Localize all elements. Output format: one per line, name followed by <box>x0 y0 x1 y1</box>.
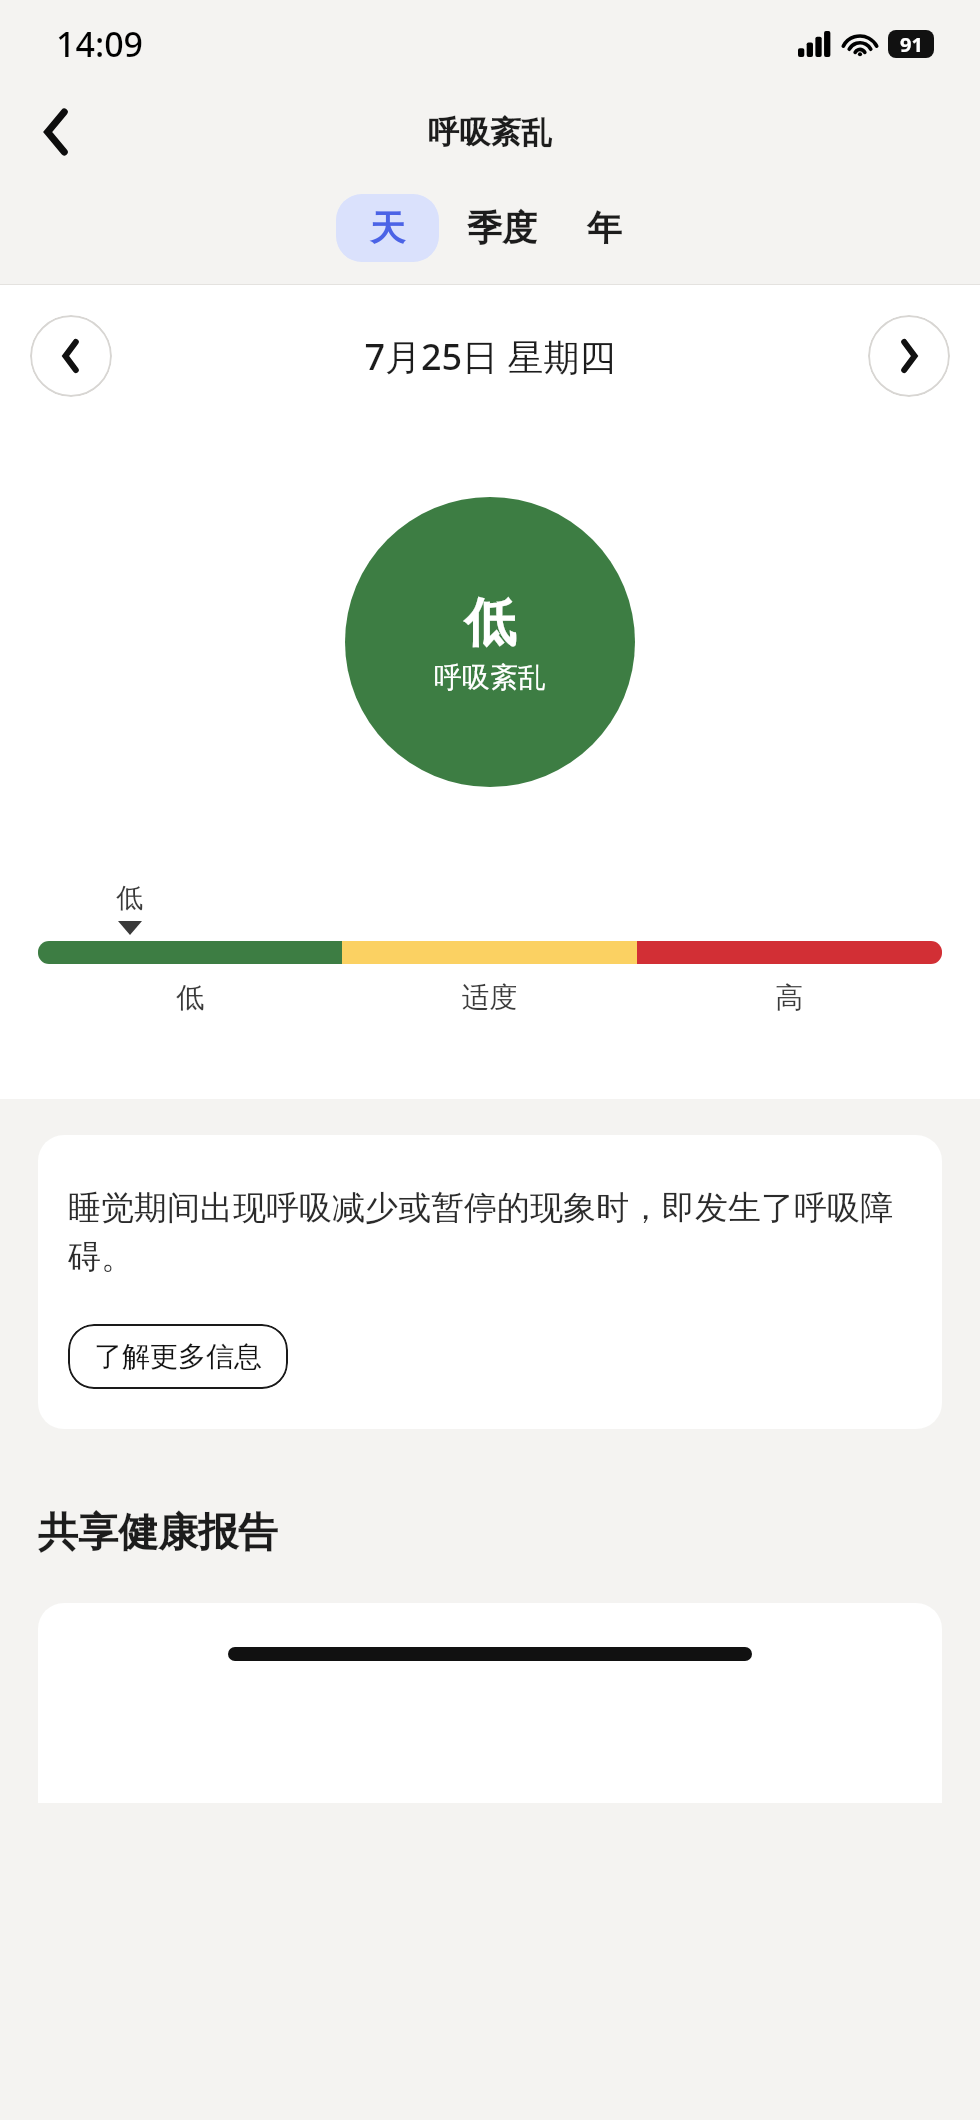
staticText: 呼吸紊乱 <box>434 660 546 695</box>
staticText: 睡觉期间出现呼吸减少或暂停的现象时，即发生了呼吸障碍。 <box>68 1187 912 1278</box>
button[interactable] <box>38 1603 942 1803</box>
staticText: 呼吸紊乱 <box>428 113 552 152</box>
button[interactable]: 天 <box>336 194 439 262</box>
staticText: 季度 <box>467 206 537 250</box>
staticText: 91 <box>900 31 923 58</box>
button[interactable]: Previous day <box>30 315 112 397</box>
staticText: 共享健康报告 <box>38 1507 278 1557</box>
staticText: 低 <box>116 881 143 915</box>
other: Cellular signal <box>798 31 832 57</box>
staticText: 天 <box>370 206 405 250</box>
other: Wi-Fi <box>844 31 876 57</box>
button[interactable]: 了解更多信息 <box>68 1324 288 1389</box>
staticText: 年 <box>587 206 622 250</box>
staticText: 低 <box>38 980 342 1015</box>
button[interactable]: Back <box>28 103 86 161</box>
staticText: 14:09 <box>56 21 144 67</box>
staticText: 低 <box>464 590 516 656</box>
button[interactable]: 年 <box>565 194 644 262</box>
staticText: 适度 <box>342 980 637 1015</box>
button[interactable]: Next day <box>868 315 950 397</box>
staticText: 高 <box>637 980 942 1015</box>
button[interactable]: 低 <box>345 497 635 787</box>
button[interactable]: 季度 <box>439 194 565 262</box>
staticText: 7月25日 星期四 <box>112 332 868 381</box>
staticText: 了解更多信息 <box>94 1339 262 1374</box>
